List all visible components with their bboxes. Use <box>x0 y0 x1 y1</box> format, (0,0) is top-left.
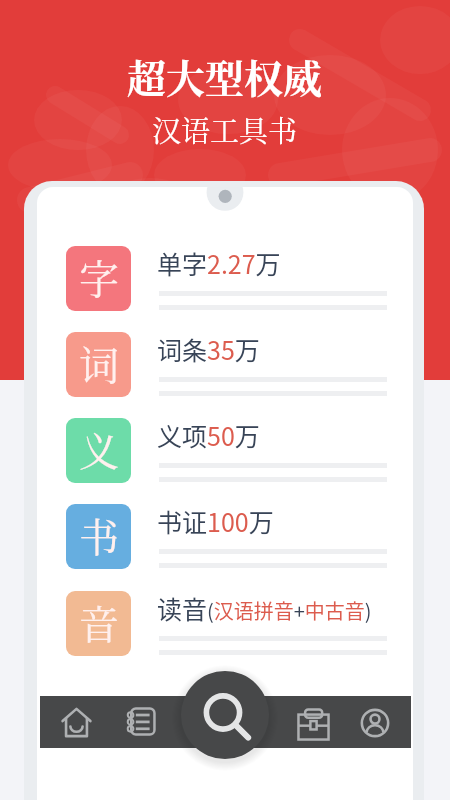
staticText: 义项50万 <box>157 417 260 453</box>
button[interactable]: Home <box>62 708 91 737</box>
staticText: 字 <box>79 248 119 305</box>
button[interactable]: 义 <box>0 418 450 484</box>
staticText: 汉语工具书 <box>152 109 298 151</box>
staticText: 书 <box>79 506 119 563</box>
button[interactable]: 词 <box>0 332 450 398</box>
staticText: 读音(汉语拼音+中古音) <box>157 590 372 626</box>
staticText: 义 <box>79 420 119 477</box>
staticText: 超大型权威 <box>127 48 323 104</box>
button[interactable]: 音 <box>0 591 450 657</box>
staticText: 词 <box>79 334 119 391</box>
button[interactable]: 书 <box>0 504 450 570</box>
staticText: 书证100万 <box>157 503 274 539</box>
button[interactable]: Notebook <box>128 708 155 735</box>
button[interactable]: Search <box>181 671 269 759</box>
staticText: 单字2.27万 <box>157 245 281 281</box>
staticText: 音 <box>79 593 119 650</box>
button[interactable]: 字 <box>0 246 450 312</box>
button[interactable]: Profile <box>361 709 389 737</box>
button[interactable]: Briefcase <box>298 709 329 740</box>
staticText: 词条35万 <box>157 331 260 367</box>
